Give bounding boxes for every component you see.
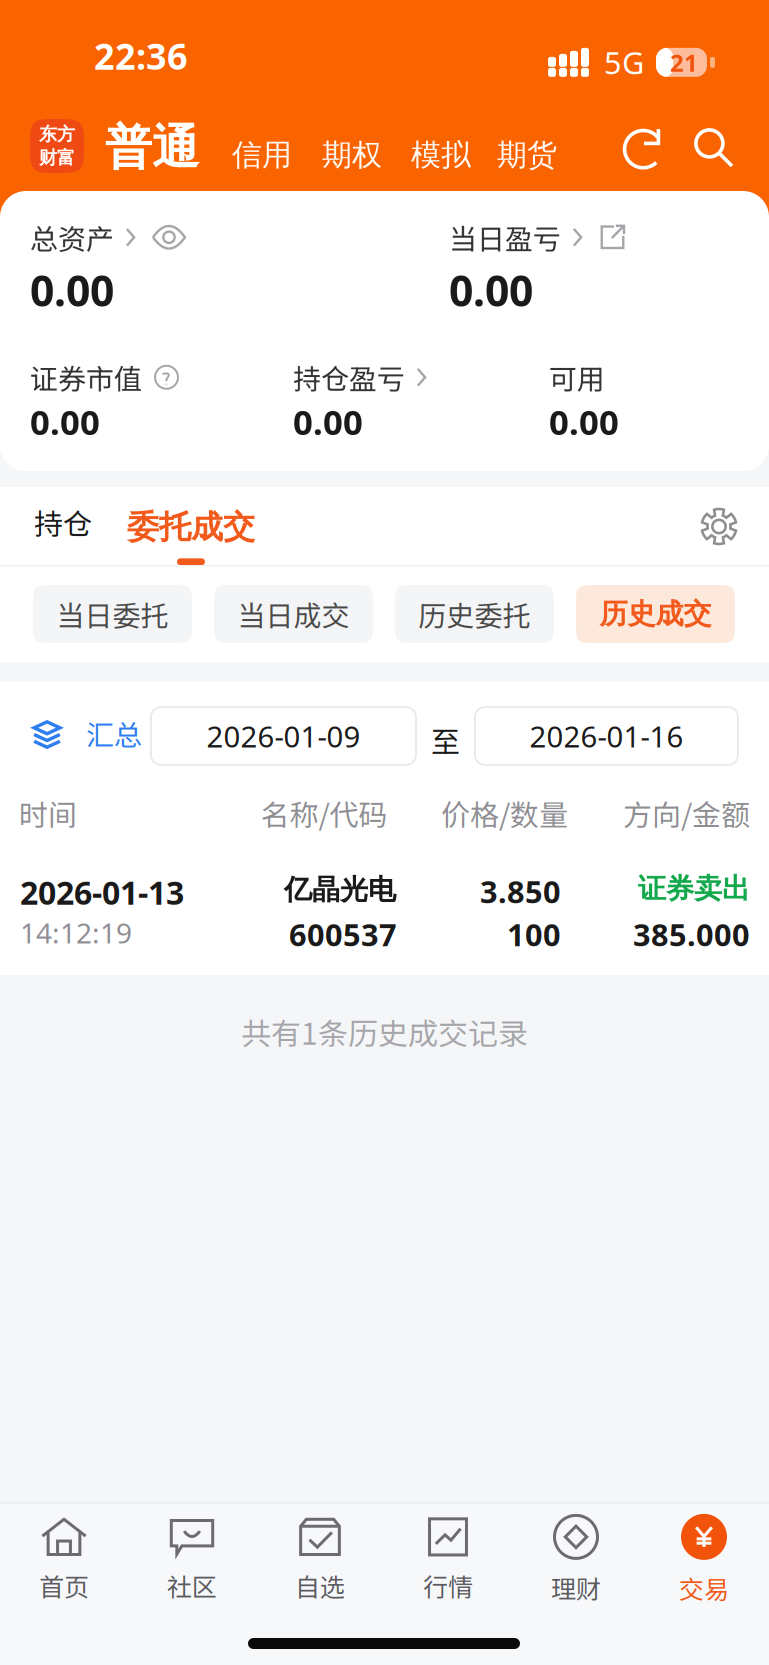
- staticText: 2026-01-09: [206, 716, 360, 755]
- staticText: 当日盈亏: [449, 217, 561, 257]
- button[interactable]: 历史成交: [576, 585, 735, 643]
- staticText: 普通: [105, 118, 199, 177]
- staticText: 委托成交: [127, 507, 255, 547]
- staticText: 期权: [322, 136, 382, 174]
- button[interactable]: 汇总: [27, 707, 148, 759]
- staticText: 证券卖出: [638, 871, 750, 906]
- button[interactable]: Search: [687, 121, 740, 174]
- staticText: 385.000: [633, 914, 750, 955]
- staticText: 自选: [295, 1567, 345, 1604]
- staticText: 3.850: [480, 871, 561, 912]
- staticText: 名称/代码: [260, 792, 387, 834]
- staticText: 信用: [232, 136, 292, 174]
- staticText: 当日委托: [56, 594, 168, 634]
- staticText: 价格/数量: [441, 792, 568, 834]
- staticText: 0.00: [293, 398, 363, 444]
- button[interactable]: Refresh: [620, 121, 673, 174]
- staticText: 2026-01-13: [20, 871, 184, 913]
- button[interactable]: 当日成交: [214, 585, 373, 643]
- staticText: 总资产: [30, 217, 114, 257]
- staticText: 600537: [289, 914, 397, 955]
- button[interactable]: 首页: [0, 1514, 128, 1606]
- staticText: 当日成交: [237, 594, 349, 634]
- button[interactable]: 2026-01-13: [0, 871, 769, 949]
- staticText: 共有1条历史成交记录: [241, 1010, 528, 1053]
- staticText: 持仓盈亏: [293, 357, 405, 397]
- button[interactable]: 2026-01-09: [151, 707, 416, 765]
- button[interactable]: 当日委托: [33, 585, 192, 643]
- staticText: 交易: [679, 1570, 729, 1606]
- staticText: 至: [431, 719, 460, 761]
- staticText: 汇总: [86, 713, 142, 753]
- button[interactable]: 模拟: [399, 130, 483, 180]
- staticText: 14:12:19: [20, 914, 132, 951]
- button[interactable]: 持仓: [24, 493, 102, 551]
- staticText: 0.00: [449, 261, 533, 318]
- staticText: 历史成交: [599, 596, 711, 632]
- staticText: 2026-01-16: [529, 716, 683, 755]
- button[interactable]: 理财: [512, 1514, 640, 1606]
- staticText: 首页: [39, 1567, 89, 1604]
- staticText: 方向/金额: [623, 792, 750, 834]
- button[interactable]: 期货: [485, 130, 569, 180]
- staticText: 历史委托: [418, 594, 530, 634]
- staticText: 可用: [549, 357, 605, 397]
- staticText: 0.00: [30, 261, 114, 318]
- staticText: 亿晶光电: [284, 872, 396, 907]
- button[interactable]: 社区: [128, 1514, 256, 1606]
- button[interactable]: 交易: [640, 1514, 768, 1606]
- button[interactable]: 行情: [384, 1514, 512, 1606]
- staticText: 21: [670, 46, 698, 78]
- staticText: 0.00: [549, 398, 619, 444]
- button[interactable]: 信用: [220, 130, 304, 180]
- button[interactable]: 历史委托: [395, 585, 554, 643]
- button[interactable]: 证券市值: [30, 357, 179, 397]
- button[interactable]: 委托成交: [117, 499, 265, 565]
- button[interactable]: Settings: [691, 499, 747, 554]
- staticText: 22:36: [94, 32, 188, 80]
- button[interactable]: 2026-01-16: [475, 707, 738, 765]
- button[interactable]: 总资产: [30, 217, 185, 257]
- staticText: 东方: [39, 123, 75, 145]
- staticText: 100: [507, 914, 561, 955]
- button[interactable]: East Money: [30, 119, 84, 173]
- button[interactable]: 持仓盈亏: [293, 357, 428, 397]
- staticText: 期货: [497, 136, 557, 174]
- staticText: 0.00: [30, 398, 100, 444]
- button[interactable]: 期权: [310, 130, 394, 180]
- button[interactable]: 当日盈亏: [449, 217, 625, 257]
- staticText: 5G: [604, 42, 644, 83]
- button[interactable]: 自选: [256, 1514, 384, 1606]
- staticText: 行情: [423, 1567, 473, 1604]
- staticText: 社区: [167, 1567, 217, 1604]
- staticText: 模拟: [411, 136, 471, 174]
- staticText: 时间: [19, 792, 77, 834]
- staticText: 财富: [39, 146, 75, 169]
- staticText: 持仓: [34, 501, 92, 543]
- button[interactable]: 普通: [93, 114, 211, 181]
- staticText: 证券市值: [30, 357, 142, 397]
- staticText: 理财: [551, 1569, 601, 1606]
